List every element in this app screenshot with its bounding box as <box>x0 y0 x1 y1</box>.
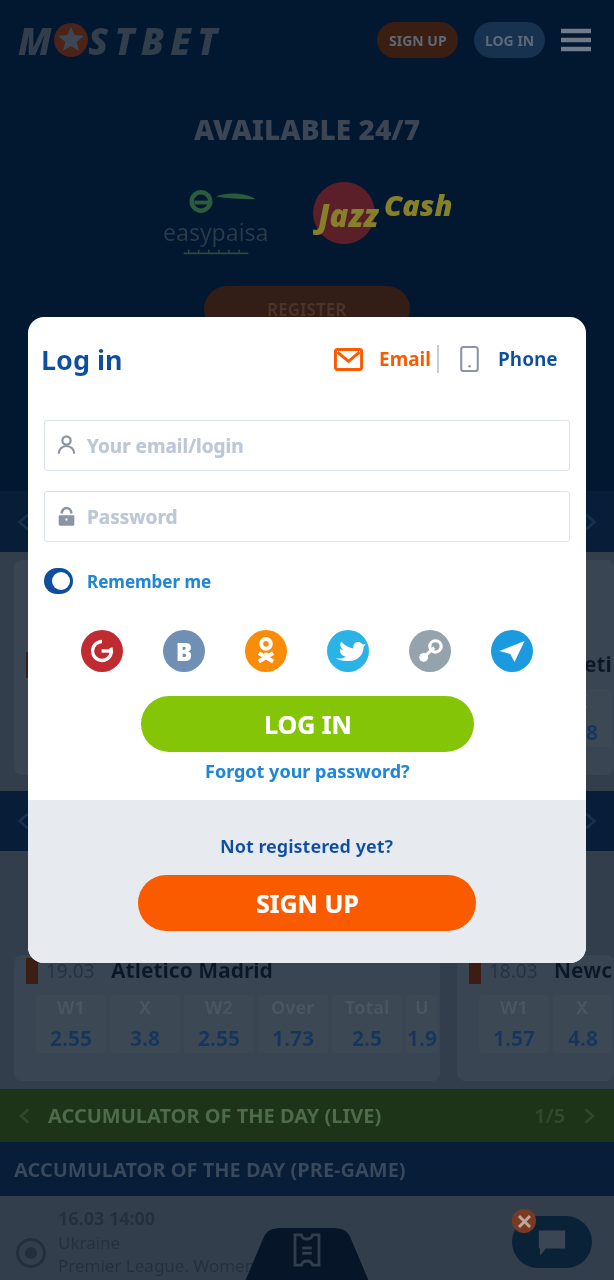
staticText: Over <box>271 689 315 714</box>
button[interactable]: ACCUMULATOR OF THE DAY (PRE-GAME) <box>0 1142 614 1196</box>
button[interactable]: 18.03 <box>457 955 614 1081</box>
staticText: Cash <box>384 185 453 224</box>
staticText: 4.8 <box>568 1024 598 1053</box>
button[interactable]: W2 <box>184 689 254 747</box>
button[interactable]: X <box>110 995 180 1053</box>
button[interactable]: X <box>110 689 180 747</box>
button[interactable]: Remember me <box>44 568 212 594</box>
button[interactable]: Total <box>332 689 402 747</box>
button[interactable]: LOG IN <box>141 696 474 752</box>
staticText: Total <box>345 689 390 714</box>
button[interactable]: Menu <box>559 23 593 57</box>
staticText: X <box>139 689 152 714</box>
staticText: Over <box>271 995 315 1020</box>
staticText: 16.03 14:00 <box>58 1206 156 1231</box>
staticText: W1 <box>500 995 528 1020</box>
button[interactable]: W2 <box>184 995 254 1053</box>
staticText: Total <box>345 995 390 1020</box>
button[interactable]: U <box>406 995 438 1053</box>
staticText: SIGN UP <box>389 31 447 50</box>
button[interactable]: 19.03 <box>14 560 440 775</box>
staticText: Newcastle <box>554 956 614 985</box>
button[interactable] <box>0 791 614 851</box>
button[interactable]: Your email/login <box>44 420 570 471</box>
button[interactable]: Sign in with Telegram <box>491 630 533 672</box>
staticText: 1.57 <box>493 1024 535 1053</box>
staticText: U <box>415 995 429 1020</box>
staticText: 1.73 <box>272 1024 314 1053</box>
button[interactable]: 19.03 <box>14 955 440 1081</box>
staticText: X <box>139 995 152 1020</box>
staticText: W1 <box>57 995 85 1020</box>
staticText: 3.8 <box>130 1024 160 1053</box>
staticText: W2 <box>205 995 233 1020</box>
staticText: Atletico Madrid <box>111 650 273 679</box>
staticText: 2.55 <box>198 1024 240 1053</box>
button[interactable]: Sign in with Steam <box>409 630 451 672</box>
button[interactable]: Sign in with Twitter <box>327 630 369 672</box>
staticText: Forgot your password? <box>205 759 410 784</box>
button[interactable]: Sign in with Odnoklassniki <box>245 630 287 672</box>
staticText: 2.55 <box>50 1024 92 1053</box>
staticText: LOG IN <box>264 707 352 741</box>
button[interactable]: Phone <box>458 345 558 373</box>
button[interactable]: W1 <box>479 995 549 1053</box>
button[interactable]: SIGN UP <box>377 22 458 58</box>
staticText: ACCUMULATOR OF THE DAY (PRE-GAME) <box>14 1156 406 1183</box>
button[interactable]: Over <box>258 689 328 747</box>
staticText: 18.03 <box>489 958 538 984</box>
staticText: LIVE <box>86 508 130 535</box>
staticText: ACCUMULATOR OF THE DAY (LIVE) <box>48 1102 382 1129</box>
button[interactable]: LOG IN <box>474 22 545 58</box>
staticText: LOG IN <box>485 31 535 50</box>
button[interactable]: Close chat <box>512 1209 536 1233</box>
button[interactable]: Chat support <box>512 1216 592 1268</box>
staticText: easypaisa <box>163 216 269 247</box>
button[interactable]: U <box>406 689 438 747</box>
button[interactable]: Forgot your password? <box>205 759 410 784</box>
staticText: STBET <box>88 15 224 65</box>
button[interactable]: Bet slip <box>287 1230 327 1270</box>
button[interactable]: Sign in with Google <box>81 630 123 672</box>
staticText: M <box>18 15 54 65</box>
staticText: 1.73 <box>272 718 314 747</box>
staticText: Ukraine <box>58 1231 121 1254</box>
button[interactable]: Total <box>332 995 402 1053</box>
staticText: Email <box>379 346 431 372</box>
staticText: 2.5 <box>352 1024 382 1053</box>
staticText: Log in <box>41 341 123 378</box>
staticText: 19.03 <box>489 652 538 678</box>
button[interactable]: ACCUMULATOR OF THE DAY (LIVE) <box>0 1089 614 1142</box>
button[interactable]: X <box>553 995 612 1053</box>
button[interactable]: LIVE <box>0 491 614 552</box>
staticText: X <box>576 995 589 1020</box>
button[interactable]: Password <box>44 491 570 542</box>
button[interactable]: 19.03 <box>457 560 614 775</box>
staticText: Atletico Madrid <box>554 650 614 679</box>
staticText: Remember me <box>87 570 212 593</box>
button[interactable]: X <box>553 689 612 747</box>
button[interactable]: REGISTER <box>204 286 410 332</box>
staticText: Phone <box>498 346 558 372</box>
staticText: Not registered yet? <box>220 834 394 859</box>
staticText: Password <box>87 504 178 530</box>
button[interactable]: Email <box>334 346 431 372</box>
staticText: REGISTER <box>267 298 347 321</box>
staticText: Atletico Madrid <box>111 956 273 985</box>
staticText: 1/5 <box>534 1102 566 1129</box>
staticText: B <box>176 635 193 668</box>
button[interactable]: Over <box>258 995 328 1053</box>
button[interactable]: W1 <box>36 995 106 1053</box>
button[interactable]: SIGN UP <box>138 875 476 931</box>
button[interactable]: Sign in with VK <box>163 630 205 672</box>
staticText: Premier League. Women <box>58 1254 256 1277</box>
staticText: AVAILABLE 24/7 <box>0 110 614 148</box>
staticText: 19.03 <box>46 958 95 984</box>
